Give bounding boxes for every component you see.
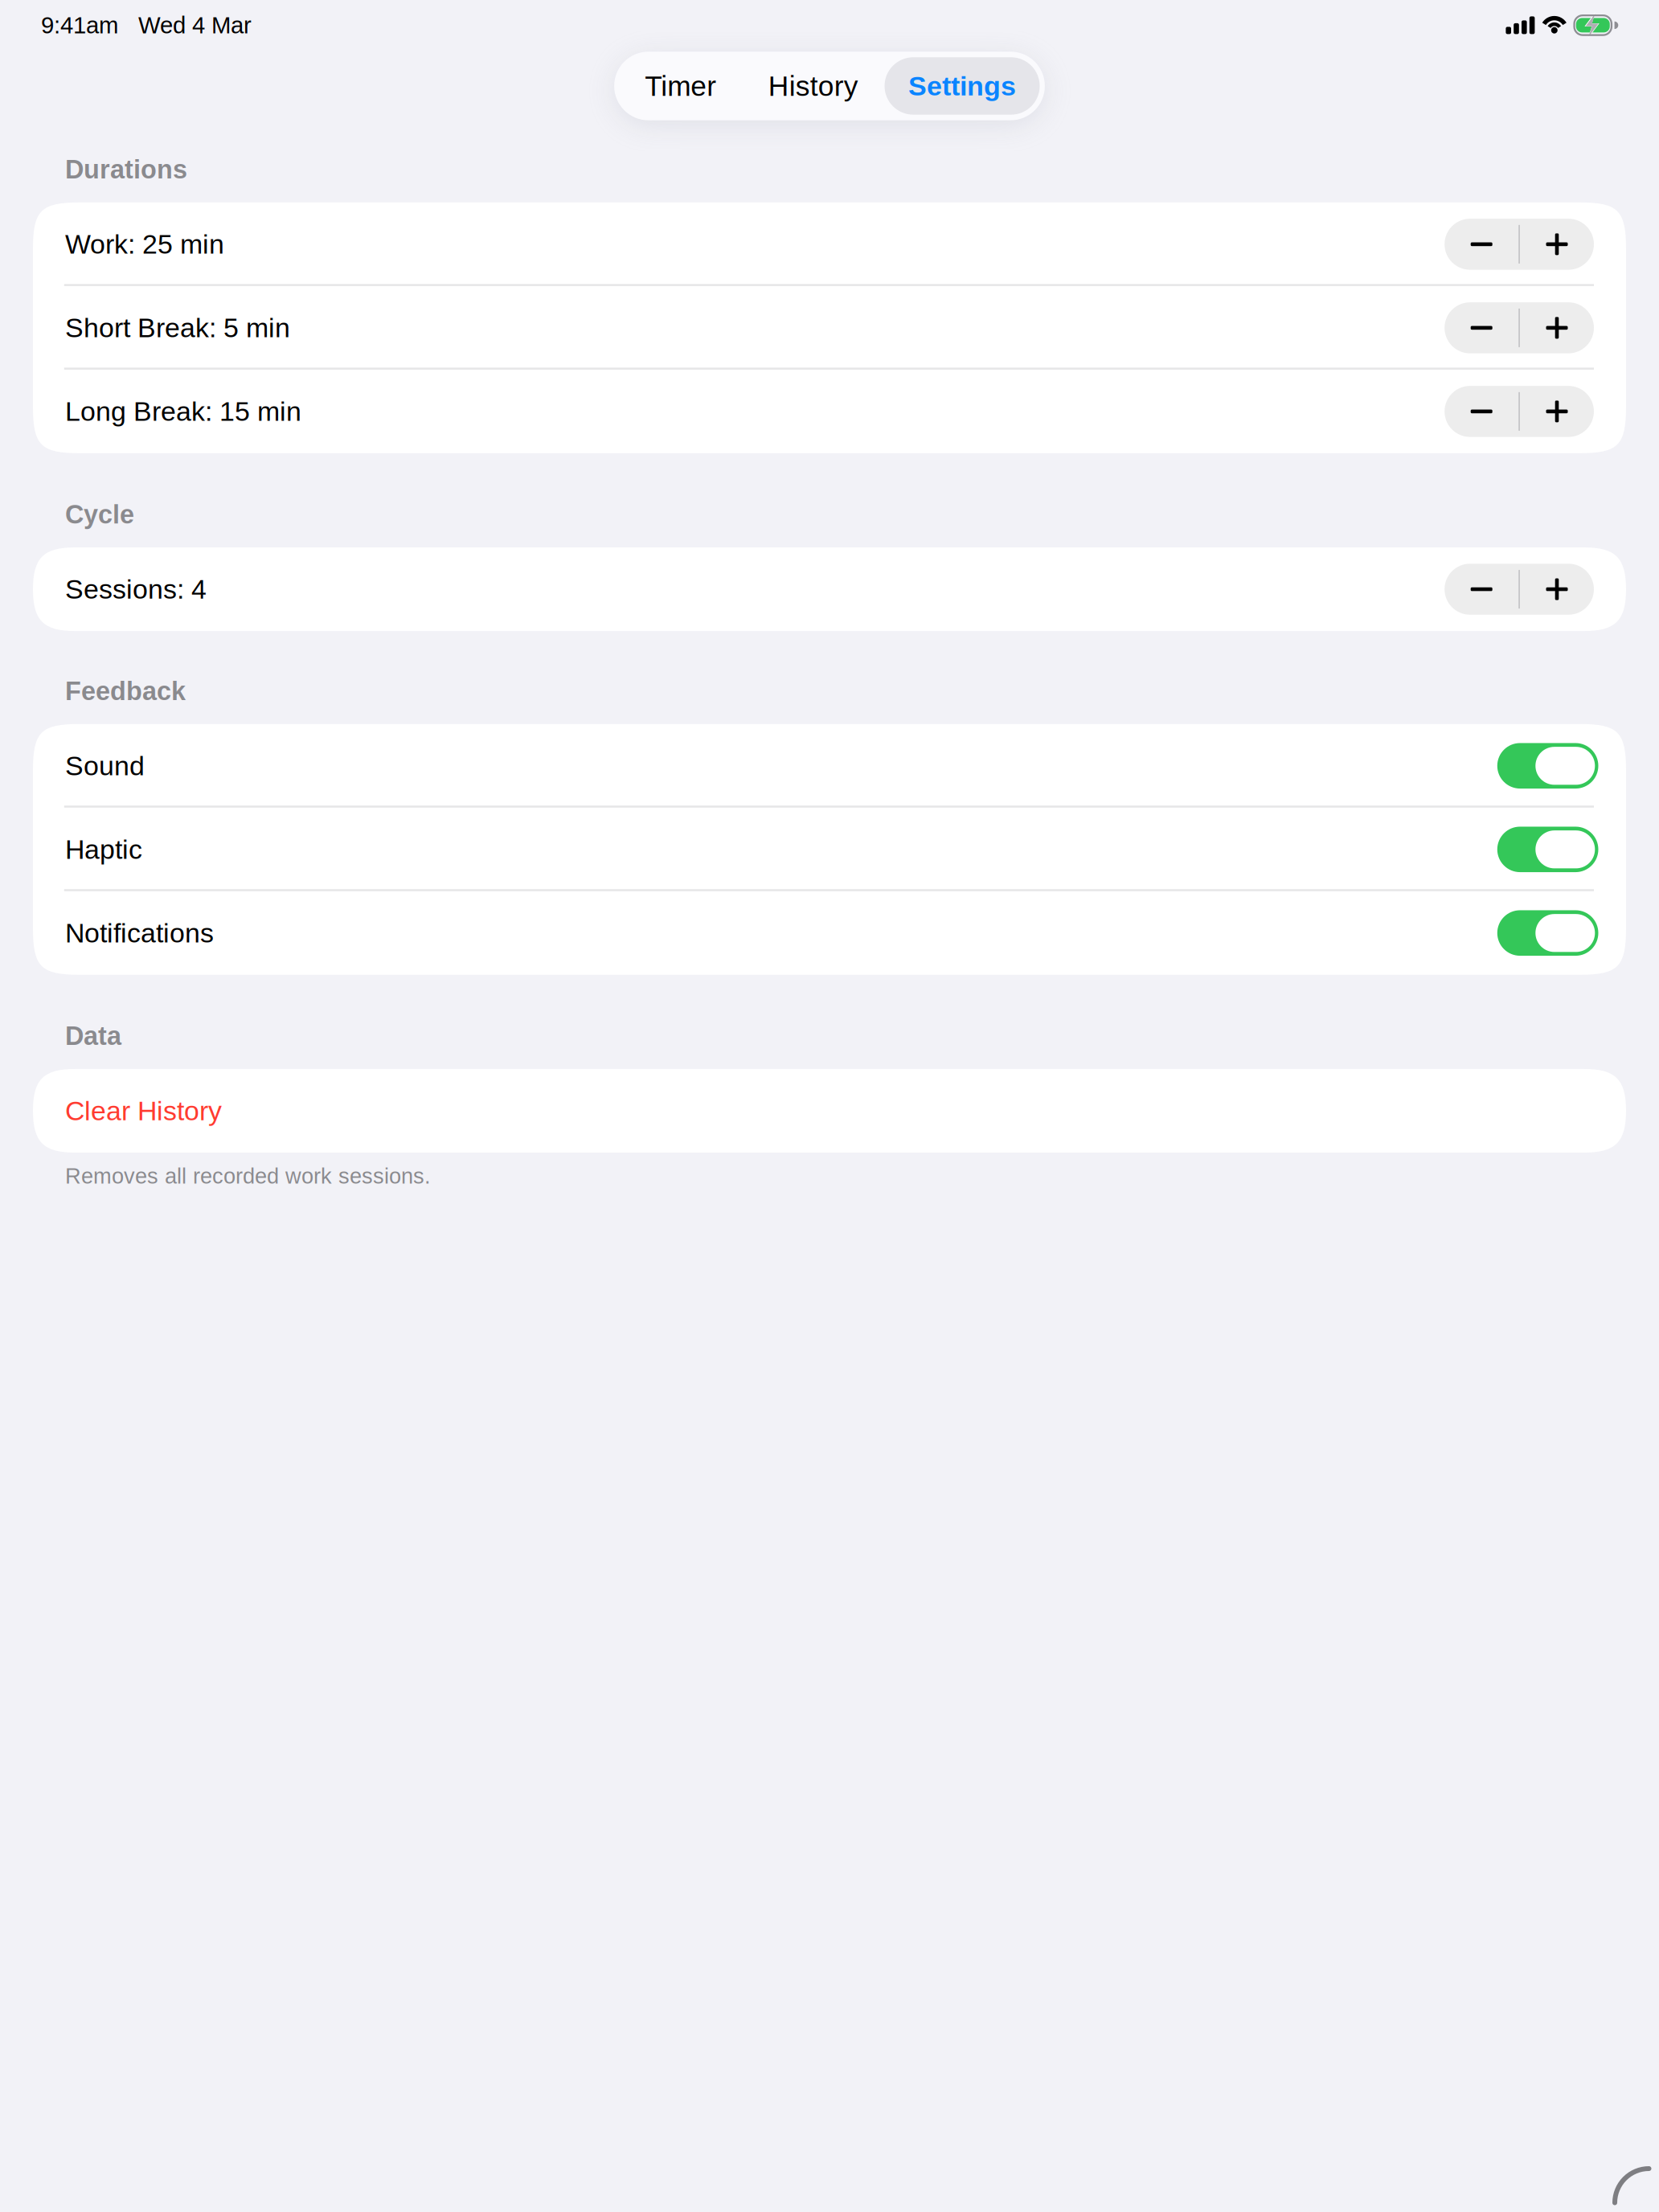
staticText: Short Break: 5 min [65, 313, 290, 343]
button[interactable]: Decrease [1445, 564, 1518, 615]
button[interactable]: Timer [619, 57, 742, 115]
button[interactable]: Notifications [1497, 910, 1598, 956]
button[interactable]: Sound [1497, 743, 1598, 789]
staticText: Removes all recorded work sessions. [65, 1164, 431, 1188]
staticText: Long Break: 15 min [65, 396, 301, 427]
staticText: Work: 25 min [65, 229, 224, 259]
staticText: Settings [908, 71, 1016, 101]
staticText: Haptic [65, 834, 142, 865]
staticText: Sound [65, 751, 145, 781]
staticText: Notifications [65, 918, 214, 948]
staticText: Clear History [65, 1096, 222, 1126]
button[interactable]: Increase [1520, 302, 1594, 353]
button[interactable]: Increase [1520, 386, 1594, 437]
button[interactable]: Increase [1520, 219, 1594, 270]
button[interactable]: Decrease [1445, 219, 1518, 270]
staticText: Feedback [65, 676, 186, 706]
button[interactable]: Clear History [33, 1069, 1626, 1153]
button[interactable]: Increase [1520, 564, 1594, 615]
staticText: Sessions: 4 [65, 574, 207, 604]
staticText: Data [65, 1021, 121, 1051]
staticText: Timer [645, 70, 716, 102]
staticText: Wed 4 Mar [138, 12, 252, 38]
staticText: Durations [65, 155, 187, 184]
staticText: History [768, 70, 858, 102]
button[interactable]: Decrease [1445, 302, 1518, 353]
staticText: Cycle [65, 500, 134, 529]
button[interactable]: Settings [885, 57, 1040, 115]
staticText: 9:41am [41, 12, 118, 38]
button[interactable]: History [742, 57, 885, 115]
button[interactable]: Haptic [1497, 827, 1598, 872]
button[interactable]: Decrease [1445, 386, 1518, 437]
